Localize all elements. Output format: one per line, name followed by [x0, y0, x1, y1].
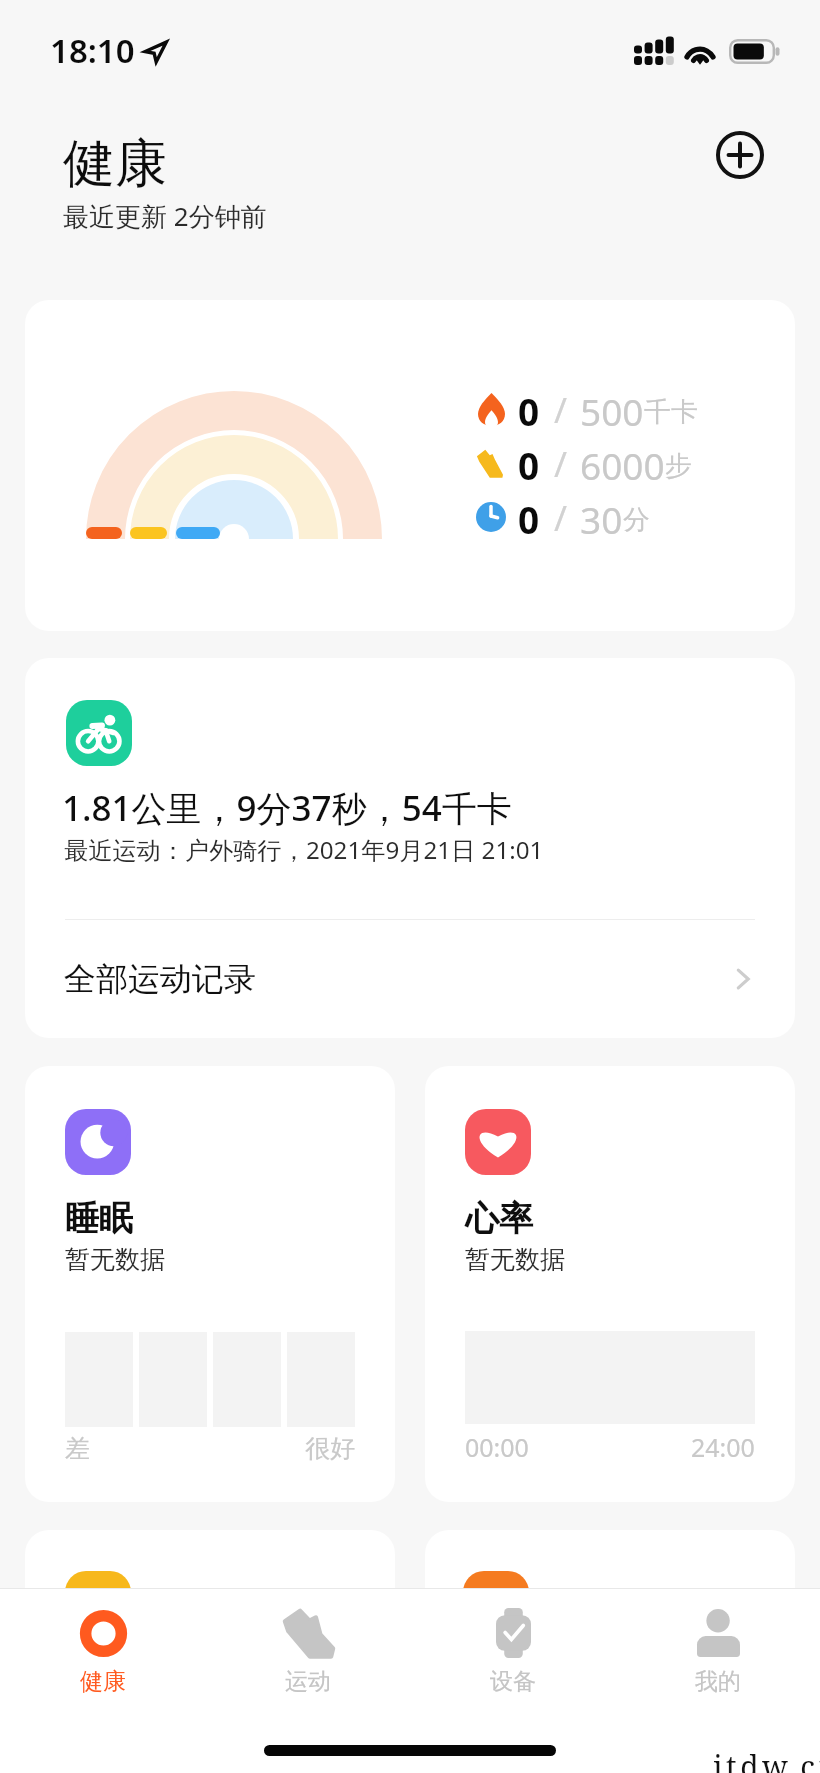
staticText: 健康	[80, 1667, 126, 1696]
staticText: 0	[518, 440, 540, 486]
staticText: 1.81公里，9分37秒，54千卡	[62, 784, 512, 832]
button[interactable]: 我的	[615, 1589, 820, 1714]
staticText: 18:10	[50, 28, 135, 73]
staticText: 心率	[465, 1197, 533, 1240]
button[interactable]: 0	[25, 300, 795, 631]
staticText: 最近运动：户外骑行，2021年9月21日 21:01	[64, 833, 544, 866]
staticText: 500	[580, 386, 644, 432]
staticText: 我的	[695, 1667, 741, 1696]
staticText: 暂无数据	[65, 1244, 165, 1275]
staticText: 设备	[490, 1667, 536, 1696]
button[interactable]: 全部运动记录	[25, 920, 795, 1038]
button[interactable]: 心率	[425, 1066, 795, 1502]
staticText: 24:00	[691, 1430, 755, 1464]
staticText: 6000	[580, 440, 665, 486]
button[interactable]: 运动	[205, 1589, 410, 1714]
staticText: 睡眠	[65, 1197, 133, 1240]
button[interactable]: 睡眠	[25, 1066, 395, 1502]
staticText: /	[554, 494, 568, 540]
staticText: 分	[623, 503, 650, 537]
button[interactable]: 设备	[410, 1589, 615, 1714]
button[interactable]: 健康	[0, 1589, 205, 1714]
staticText: 0	[518, 386, 540, 432]
staticText: 暂无数据	[465, 1244, 565, 1275]
staticText: 0	[518, 494, 540, 540]
button[interactable]: Add	[712, 127, 768, 183]
staticText: 运动	[285, 1667, 331, 1696]
staticText: 全部运动记录	[64, 959, 256, 999]
staticText: /	[554, 440, 568, 486]
staticText: 健康	[63, 131, 167, 197]
button[interactable]	[425, 1530, 795, 1730]
staticText: 30	[580, 494, 623, 540]
staticText: 最近更新 2分钟前	[63, 198, 267, 234]
staticText: 差	[65, 1433, 90, 1464]
staticText: 很好	[305, 1433, 355, 1464]
staticText: 步	[665, 449, 692, 483]
staticText: itdw.cn	[713, 1746, 820, 1773]
staticText: /	[554, 386, 568, 432]
staticText: 00:00	[465, 1430, 529, 1464]
button[interactable]	[25, 1530, 395, 1730]
staticText: 千卡	[644, 395, 698, 429]
